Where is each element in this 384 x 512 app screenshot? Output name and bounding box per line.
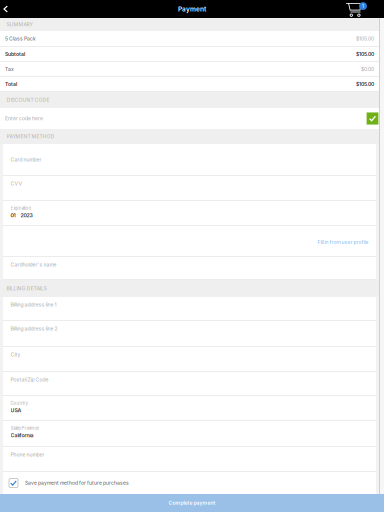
staticText: Billing address line 2: [10, 325, 57, 332]
staticText: Payment: [178, 5, 206, 13]
staticText: Card number: [10, 156, 41, 163]
staticText: City: [10, 351, 20, 358]
staticText: Cardholder's name: [10, 261, 56, 268]
staticText: USA: [10, 407, 21, 413]
staticText: Tax: [5, 66, 14, 72]
staticText: $105.00: [356, 35, 374, 42]
staticText: Subtotal: [5, 51, 25, 57]
staticText: 01 2023: [10, 212, 32, 218]
staticText: Billing address line 1: [10, 301, 56, 308]
staticText: PAYMENT METHOD: [6, 133, 54, 139]
staticText: Fill in from user profile: [317, 239, 368, 245]
staticText: Total: [5, 81, 17, 87]
staticText: California: [10, 432, 33, 438]
staticText: State/Province: [10, 425, 38, 431]
staticText: Expiration: [10, 205, 31, 211]
button[interactable]: Shopping cart, 1 item: [345, 0, 384, 18]
staticText: Postal/Zip Code: [10, 376, 48, 383]
button[interactable]: Back: [0, 0, 14, 18]
button[interactable]: Fill in from user profile: [317, 239, 376, 245]
button[interactable]: Complete payment: [0, 494, 384, 512]
staticText: Phone number: [10, 451, 44, 458]
staticText: Country: [10, 400, 27, 406]
staticText: $105.00: [356, 81, 374, 87]
staticText: DISCOUNT CODE: [6, 97, 49, 103]
button[interactable]: Apply discount code: [367, 112, 378, 125]
staticText: CVV: [10, 180, 21, 187]
button[interactable]: Save payment method for future purchases: [3, 472, 376, 494]
staticText: Save payment method for future purchases: [25, 480, 129, 486]
staticText: 1: [362, 3, 364, 9]
staticText: 5 Class Pack: [5, 35, 36, 42]
staticText: $0.00: [361, 66, 374, 72]
staticText: Enter code here: [5, 115, 43, 121]
staticText: $105.00: [356, 51, 374, 57]
staticText: BILLING DETAILS: [6, 285, 46, 291]
staticText: Complete payment: [168, 500, 215, 506]
staticText: SUMMARY: [6, 21, 32, 27]
